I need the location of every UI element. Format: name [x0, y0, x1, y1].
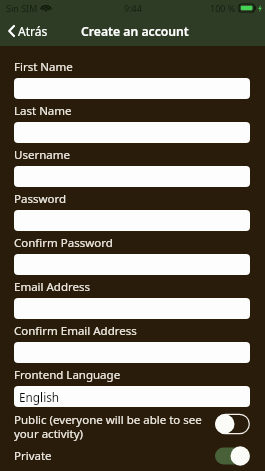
button[interactable] — [14, 210, 250, 231]
staticText: Create an account — [81, 23, 189, 40]
staticText: Password — [14, 191, 67, 207]
button[interactable]: Switch on — [215, 446, 250, 466]
staticText: Frontend Language — [14, 367, 121, 383]
button[interactable] — [14, 122, 250, 143]
staticText: Confirm Email Address — [14, 323, 137, 339]
staticText: English — [19, 389, 60, 405]
button[interactable]: Atrás — [0, 19, 58, 43]
staticText: Confirm Password — [14, 235, 113, 251]
staticText: Public (everyone will be able to see you… — [14, 412, 209, 442]
button[interactable] — [14, 298, 250, 319]
button[interactable]: English — [14, 386, 250, 407]
staticText: First Name — [14, 59, 73, 75]
staticText: Sin SIM — [6, 2, 38, 14]
staticText: 100 % — [210, 2, 236, 14]
staticText: Last Name — [14, 103, 72, 119]
staticText: Username — [14, 147, 70, 163]
button[interactable] — [14, 342, 250, 363]
staticText: Email Address — [14, 279, 91, 295]
button[interactable]: Switch off — [215, 414, 250, 434]
staticText: Atrás — [18, 23, 48, 39]
button[interactable] — [14, 78, 250, 99]
button[interactable] — [14, 166, 250, 187]
staticText: Private — [14, 448, 209, 464]
button[interactable] — [14, 254, 250, 275]
staticText: 9:44 — [124, 2, 142, 14]
